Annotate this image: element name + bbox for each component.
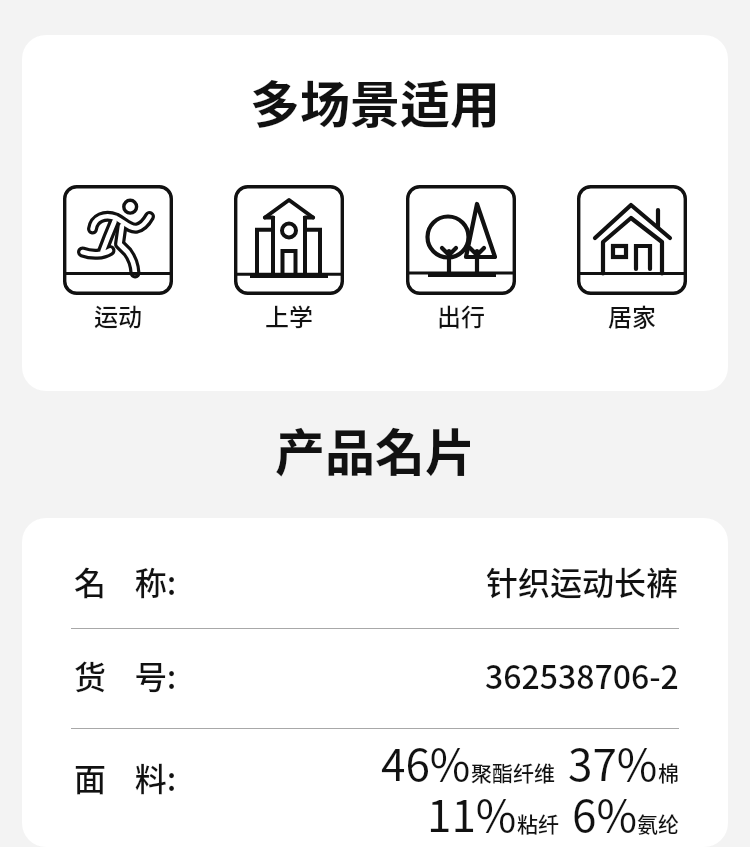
button[interactable]: 名 称: [22, 518, 728, 628]
staticText: 多场景适用 [250, 65, 500, 137]
staticText: 货 号: [74, 652, 177, 698]
staticText: 46% [381, 730, 471, 794]
staticText: 聚酯纤维 [471, 757, 555, 787]
staticText: 面 料: [74, 754, 177, 800]
button[interactable]: 面 料: [22, 729, 728, 847]
staticText: 37% [568, 730, 658, 794]
staticText: 上学 [265, 298, 313, 333]
staticText: 名 称: [74, 558, 177, 604]
button[interactable]: Travel [406, 185, 516, 333]
button[interactable]: School [234, 185, 344, 333]
button[interactable]: Home [577, 185, 687, 333]
button[interactable]: 货 号: [22, 629, 728, 728]
staticText: 运动 [94, 298, 142, 333]
staticText: 362538706-2 [485, 652, 679, 698]
staticText: 6% [572, 781, 637, 835]
staticText: 产品名片 [275, 413, 475, 485]
staticText: 11% [427, 781, 517, 835]
button[interactable]: Sports [63, 185, 173, 333]
staticText: 氨纶 [637, 808, 679, 838]
staticText: 居家 [608, 298, 656, 333]
staticText: 针织运动长裤 [486, 558, 679, 604]
staticText: 出行 [437, 298, 485, 333]
staticText: 棉 [658, 757, 679, 787]
staticText: 粘纤 [517, 808, 559, 838]
